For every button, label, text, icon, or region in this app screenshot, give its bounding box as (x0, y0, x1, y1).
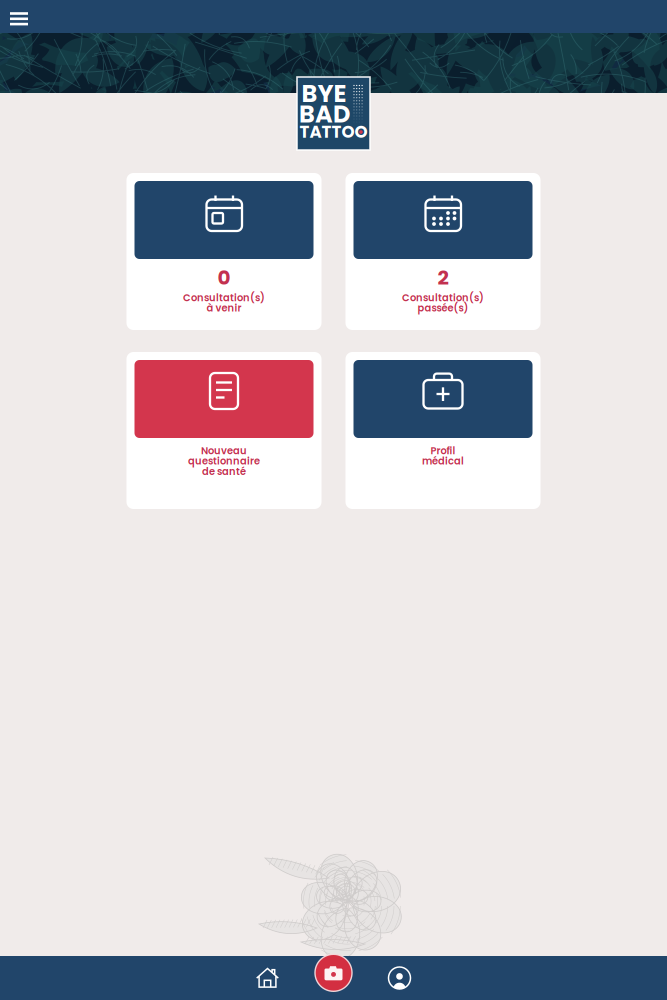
staticText: Profil (430, 444, 455, 458)
button[interactable]: Profile (366, 956, 432, 1000)
staticText: Consultation(s) (183, 291, 265, 305)
staticText: TATTO (299, 120, 354, 144)
staticText: 2 (437, 263, 448, 291)
button[interactable]: Menu (0, 0, 40, 33)
button[interactable]: 0 (126, 173, 321, 330)
staticText: O (354, 120, 367, 144)
staticText: Nouveau (201, 444, 247, 458)
button[interactable]: 2 (345, 173, 540, 330)
button[interactable]: Camera (300, 956, 366, 1000)
staticText: Consultation(s) (402, 291, 484, 305)
staticText: médical (422, 454, 464, 468)
staticText: passée(s) (417, 301, 468, 315)
staticText: BYE (301, 77, 346, 110)
staticText: à venir (206, 301, 241, 315)
button[interactable]: Profil (345, 352, 540, 509)
staticText: BAD (299, 97, 350, 131)
button[interactable]: Nouveau (126, 352, 321, 509)
staticText: 0 (217, 263, 230, 291)
button[interactable]: Home (234, 956, 300, 1000)
staticText: de santé (202, 465, 246, 478)
staticText: questionnaire (188, 454, 260, 468)
